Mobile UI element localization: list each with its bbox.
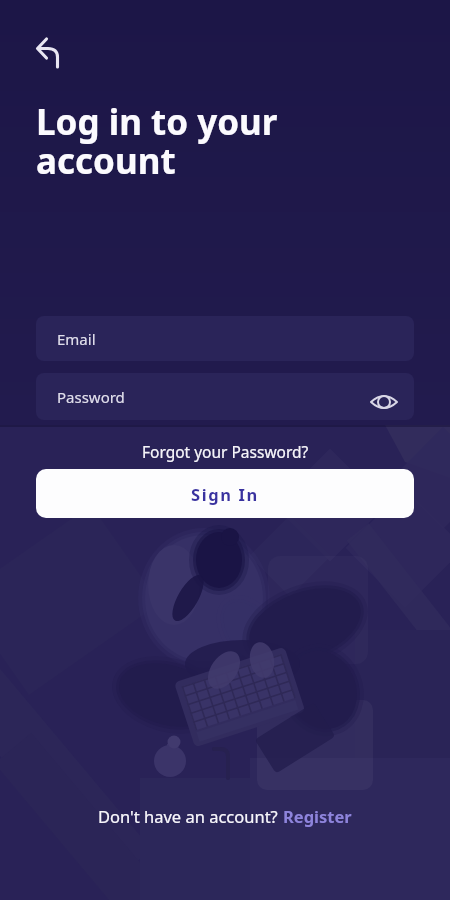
button[interactable] (26, 26, 70, 70)
button[interactable] (369, 387, 399, 417)
button[interactable]: Forgot your Password? (142, 441, 309, 462)
button[interactable]: Sign In (36, 469, 414, 518)
staticText: Email (57, 329, 96, 349)
staticText: Don't have an account? (98, 805, 283, 827)
button[interactable]: Email (36, 316, 414, 361)
staticText: Log in to your account (36, 98, 278, 184)
button[interactable]: Register (283, 805, 352, 827)
button[interactable]: Password (36, 373, 414, 420)
staticText: Sign In (191, 483, 259, 505)
staticText: Password (57, 387, 125, 407)
